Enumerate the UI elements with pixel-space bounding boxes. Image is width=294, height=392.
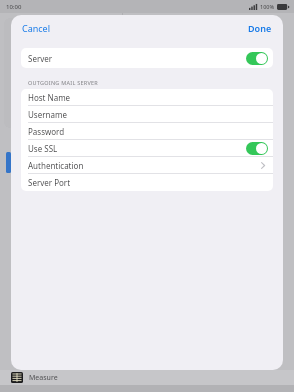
button[interactable]: Measure app icon (0, 370, 294, 385)
button[interactable]: Username (21, 106, 273, 123)
staticText: Username (28, 109, 67, 120)
button[interactable]: Done (242, 19, 278, 37)
staticText: 100% (260, 3, 275, 10)
other: Measure app icon (11, 372, 23, 383)
button[interactable]: Server on (246, 52, 268, 65)
button[interactable]: Authentication (21, 157, 273, 174)
staticText: Server Port (28, 177, 71, 188)
staticText: Use SSL (28, 143, 58, 154)
button[interactable]: Server Port (21, 174, 273, 191)
staticText: Host Name (28, 92, 71, 103)
staticText: 10:00 (6, 3, 22, 11)
button[interactable]: Use SSL on (246, 142, 268, 155)
staticText: Password (28, 126, 65, 137)
staticText: Done (248, 22, 272, 34)
staticText: Measure (29, 373, 58, 383)
staticText: Authentication (28, 160, 84, 171)
staticText: OUTGOING MAIL SERVER (28, 79, 98, 86)
staticText: Cancel (22, 22, 51, 34)
button[interactable]: Host Name (21, 89, 273, 106)
button[interactable]: Cancel (16, 19, 57, 37)
button[interactable]: Password (21, 123, 273, 140)
staticText: Server (28, 53, 53, 64)
